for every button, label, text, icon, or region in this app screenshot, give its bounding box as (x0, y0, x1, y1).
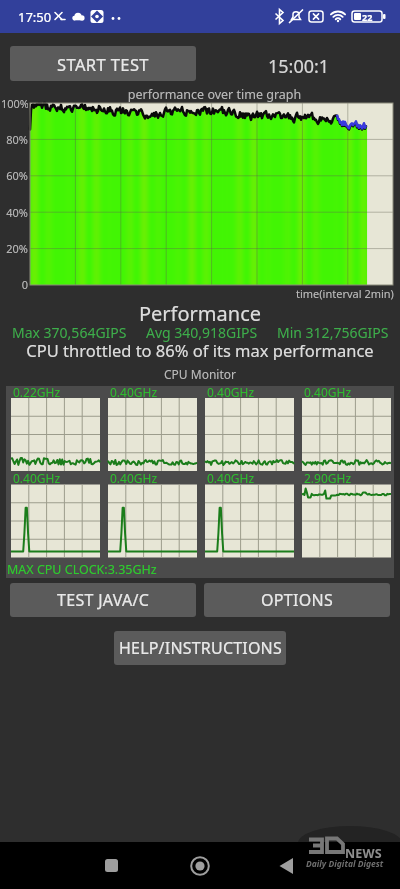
button[interactable]: TEST JAVA/C (10, 583, 196, 617)
staticText: 20% (6, 241, 28, 256)
staticText: CPU Monitor (0, 366, 400, 382)
staticText: 80% (6, 132, 28, 147)
staticText: Max 370,564GIPS (12, 323, 127, 342)
staticText: 0.40GHz (207, 470, 255, 486)
staticText: Performance (0, 300, 400, 327)
staticText: 60% (6, 168, 28, 183)
staticText: 0.22GHz (13, 384, 61, 400)
staticText: MAX CPU CLOCK:3.35GHz (7, 561, 157, 578)
staticText: Avg 340,918GIPS (146, 323, 258, 342)
staticText: time(interval 2min) (296, 286, 394, 300)
staticText: Min 312,756GIPS (277, 323, 389, 342)
button[interactable]: START TEST (10, 46, 196, 81)
staticText: 0.40GHz (13, 470, 61, 486)
staticText: 2.90GHz (304, 470, 352, 486)
button[interactable]: Recents (70, 842, 153, 889)
staticText: 0.40GHz (304, 384, 352, 400)
staticText: 15:00:1 (268, 54, 330, 79)
staticText: OPTIONS (261, 589, 334, 611)
staticText: HELP/INSTRUCTIONS (119, 637, 282, 659)
button[interactable]: HELP/INSTRUCTIONS (114, 631, 286, 665)
staticText: TEST JAVA/C (57, 589, 150, 611)
staticText: CPU throttled to 86% of its max performa… (0, 339, 400, 360)
staticText: 22 (362, 11, 373, 23)
staticText: 100% (0, 96, 28, 111)
button[interactable]: OPTIONS (204, 583, 390, 617)
staticText: 17:50 (18, 8, 52, 26)
staticText: START TEST (57, 53, 149, 75)
staticText: 0 (21, 277, 28, 292)
button[interactable]: Home (158, 842, 241, 889)
staticText: performance over time graph (29, 86, 400, 103)
staticText: 40% (6, 205, 28, 220)
staticText: NEWS (345, 845, 382, 862)
staticText: Daily Digital Digest (306, 858, 384, 870)
staticText: 0.40GHz (110, 384, 158, 400)
button[interactable]: Back (245, 842, 328, 889)
staticText: 0.40GHz (207, 384, 255, 400)
staticText: 0.40GHz (110, 470, 158, 486)
